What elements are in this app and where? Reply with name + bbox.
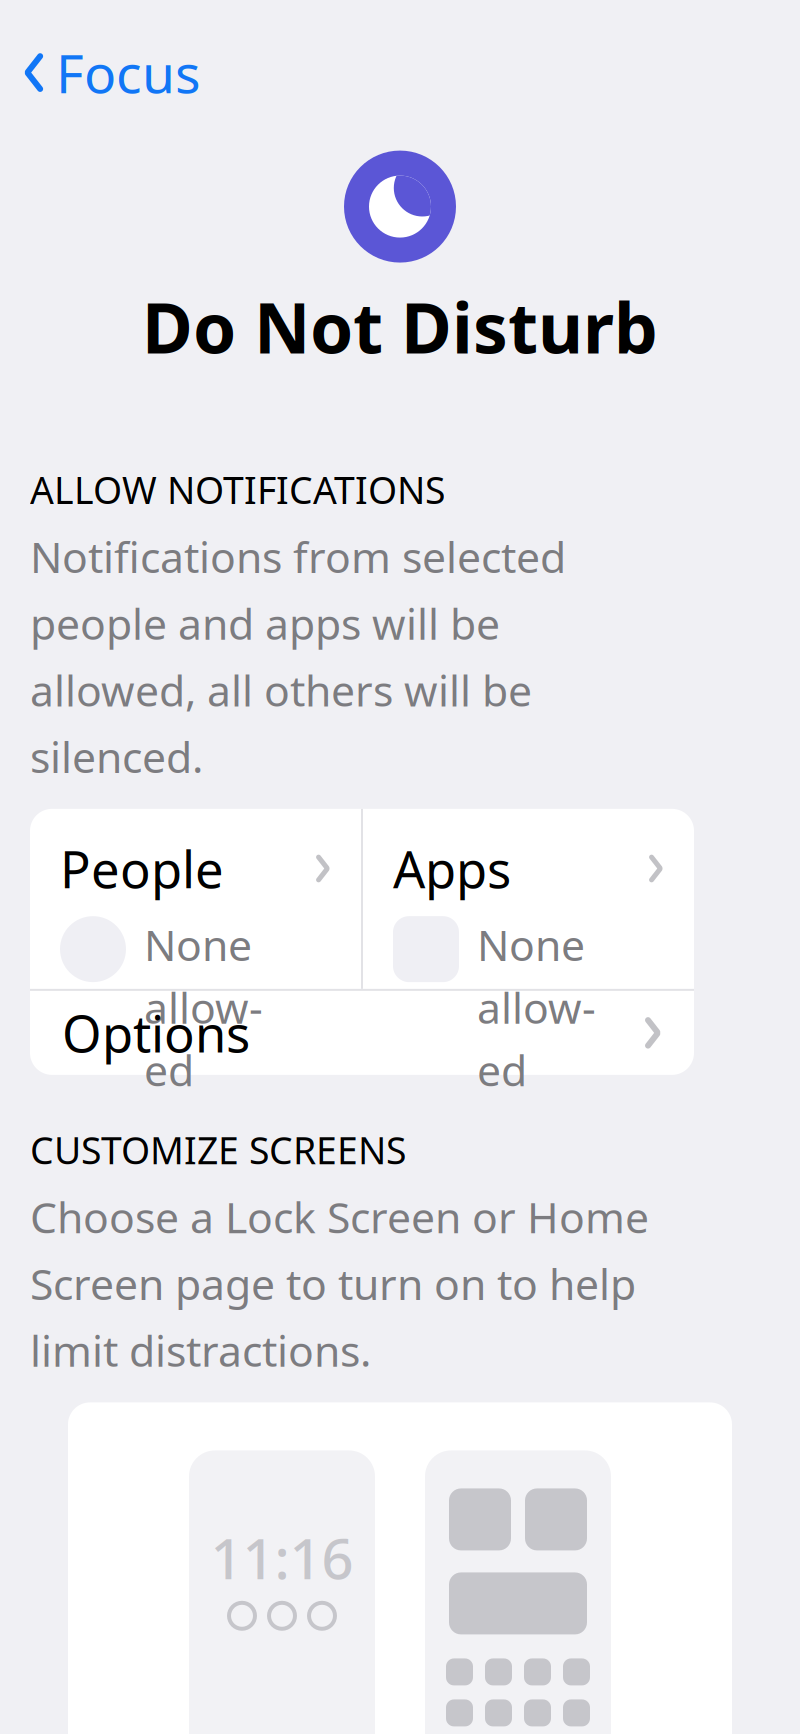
staticText: Options: [62, 999, 250, 1066]
button[interactable]: Options: [30, 991, 694, 1075]
staticText: CUSTOMIZE SCREENS: [30, 1125, 406, 1174]
staticText: ALLOW NOTIFICATIONS: [30, 465, 445, 514]
staticText: Choose a Lock Screen or Home Screen page…: [30, 1188, 649, 1378]
staticText: Notifications from selected people and a…: [30, 528, 566, 785]
button[interactable]: Apps: [363, 809, 694, 989]
staticText: Focus: [56, 37, 201, 108]
staticText: Do Not Disturb: [142, 281, 658, 373]
button[interactable]: People: [30, 809, 361, 989]
staticText: Apps: [393, 835, 511, 902]
staticText: None allowed: [144, 916, 263, 1098]
button[interactable]: Focus: [0, 25, 215, 120]
staticText: None allowed: [477, 916, 596, 1098]
button[interactable]: Home Screen: [425, 1450, 611, 1734]
button[interactable]: Lock Screen: [189, 1450, 375, 1734]
staticText: 11:16: [210, 1520, 353, 1595]
staticText: People: [60, 835, 224, 902]
